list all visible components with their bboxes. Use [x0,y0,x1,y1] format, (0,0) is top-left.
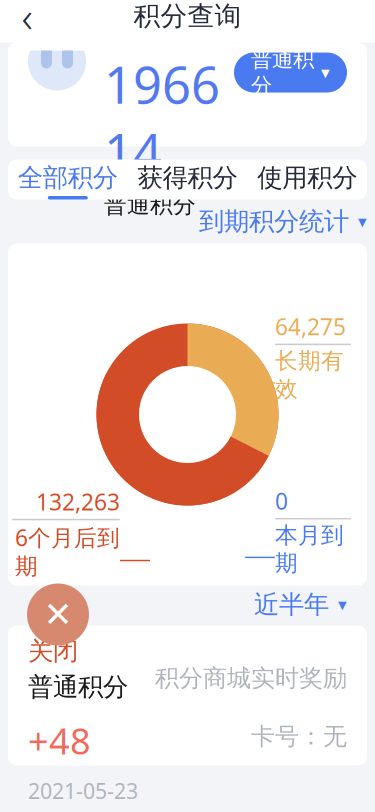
staticText: 64,275 [275,311,346,342]
button[interactable]: 近半年 [254,587,347,621]
button[interactable]: 到期积分统计 [8,205,367,237]
staticText: ‹ [21,0,32,44]
staticText: 196614 [104,50,220,185]
staticText: 2021-05-23 [28,776,138,805]
staticText: 关闭 [28,635,78,667]
staticText: 全部积分 [18,162,118,193]
staticText: 使用积分 [257,162,357,193]
staticText: ▾ [321,63,330,82]
button[interactable]: 获得积分 [128,159,247,199]
staticText: 近半年 [254,589,329,620]
staticText: +48 [28,717,91,764]
button[interactable]: 使用积分 [247,159,367,199]
staticText: 普通积分 [104,191,196,219]
staticText: 0 [275,486,288,516]
staticText: 普通积分 [28,672,128,703]
staticText: 积分查询 [133,0,241,32]
staticText: 获得积分 [137,162,237,193]
staticText: 积分商城实时奖励 [155,663,347,693]
staticText: ▾ [358,212,367,231]
button[interactable]: 全部积分 [8,159,128,199]
staticText: 132,263 [36,487,120,517]
staticText: 本月到期 [275,521,344,577]
button[interactable]: 普通积分 [234,52,347,92]
staticText: 普通积分 [251,46,314,99]
button[interactable]: Close [27,583,89,645]
staticText: ▾ [338,595,347,614]
staticText: 6个月后到期 [15,522,120,580]
staticText: ✕ [43,595,72,634]
staticText: 卡号：无 [251,722,347,751]
button[interactable]: Back [5,0,49,38]
staticText: 到期积分统计 [199,206,349,237]
staticText: 长期有效 [275,347,344,403]
